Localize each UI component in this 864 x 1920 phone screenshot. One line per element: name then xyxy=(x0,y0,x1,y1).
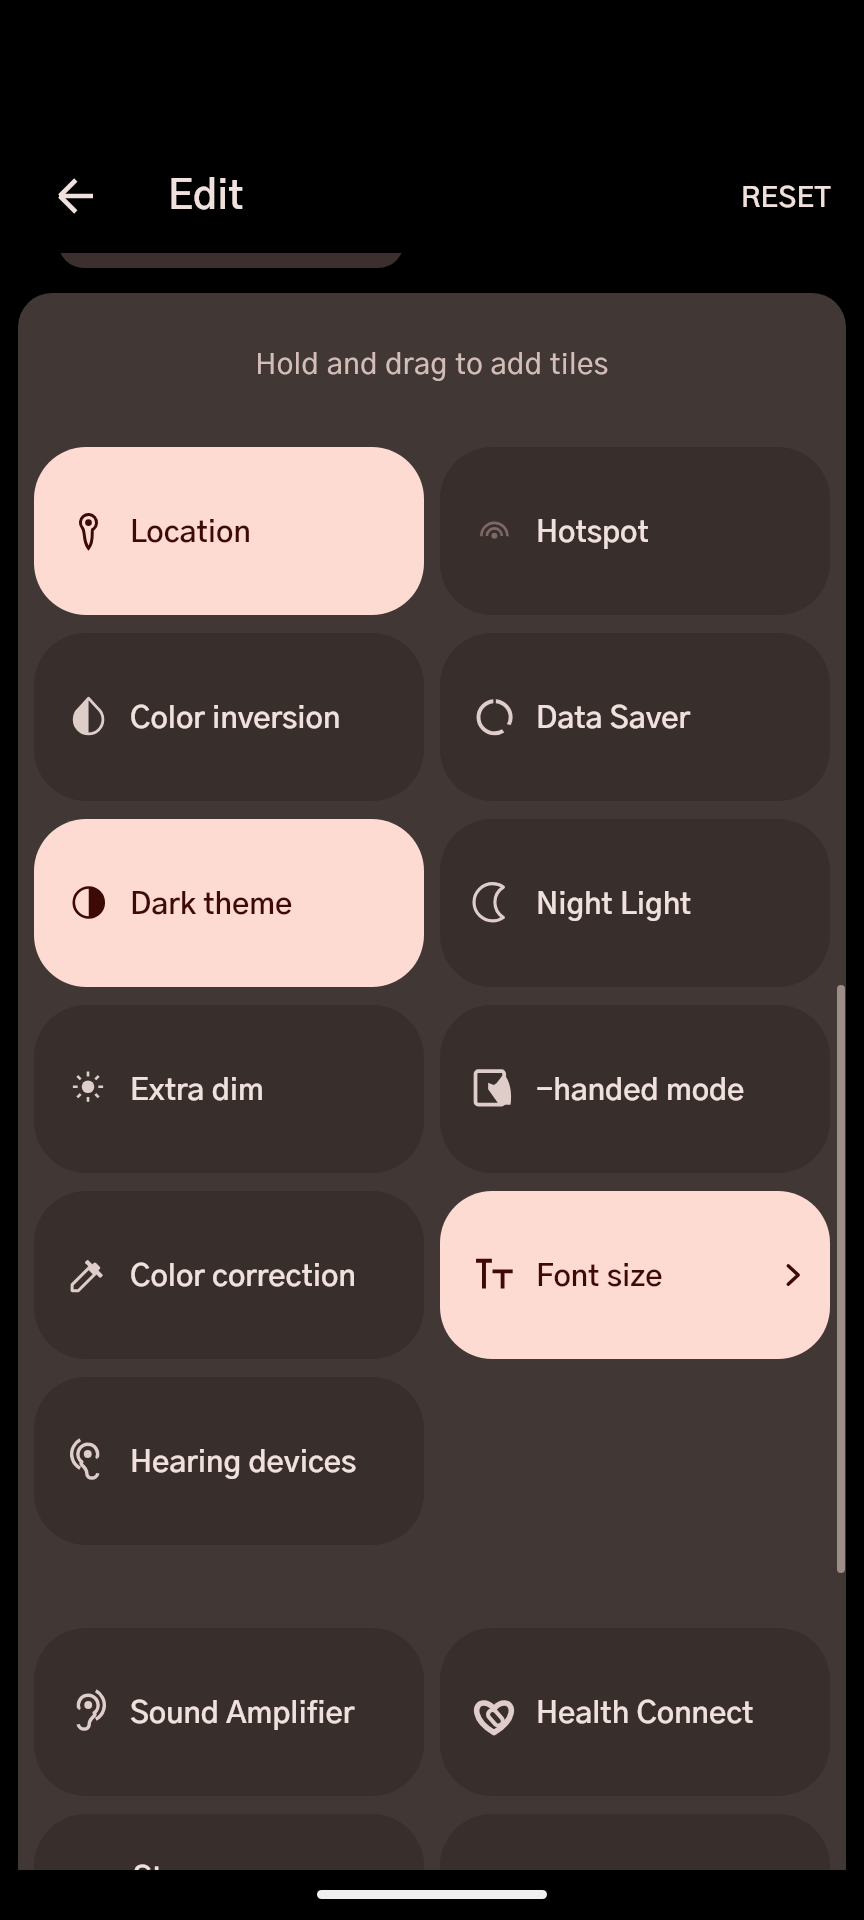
staticText: Sound Amplifier xyxy=(130,1699,355,1729)
staticText: Extra dim xyxy=(130,1076,264,1106)
button[interactable]: Color correction xyxy=(34,1191,424,1359)
staticText: Hotspot xyxy=(536,518,649,548)
button[interactable]: RESET xyxy=(719,157,853,241)
button[interactable]: Font size xyxy=(440,1191,830,1359)
staticText: -handed mode xyxy=(536,1076,745,1106)
staticText: Night Light xyxy=(536,890,692,920)
staticText: Location xyxy=(130,518,251,548)
button[interactable]: Health Connect xyxy=(440,1628,830,1796)
button[interactable]: Hearing devices xyxy=(34,1377,424,1545)
button[interactable]: Extra dim xyxy=(34,1005,424,1173)
staticText: Hearing devices xyxy=(130,1448,357,1478)
staticText: Dark theme xyxy=(130,890,293,920)
button[interactable]: Dark theme xyxy=(34,819,424,987)
button[interactable]: Data Saver xyxy=(440,633,830,801)
staticText: Health Connect xyxy=(536,1699,754,1729)
staticText: Font size xyxy=(536,1262,663,1292)
button[interactable] xyxy=(34,1814,424,1920)
button[interactable]: Location xyxy=(34,447,424,615)
staticText: RESET xyxy=(741,185,832,213)
staticText: Hold and drag to add tiles xyxy=(18,351,846,380)
staticText: Edit xyxy=(168,177,244,217)
button[interactable]: Color inversion xyxy=(34,633,424,801)
staticText: Color correction xyxy=(130,1262,356,1292)
button[interactable]: Night Light xyxy=(440,819,830,987)
button[interactable] xyxy=(440,1814,830,1920)
button[interactable]: Back xyxy=(48,168,104,224)
button[interactable]: Sound Amplifier xyxy=(34,1628,424,1796)
staticText: Storage xyxy=(133,1864,244,1894)
staticText: Color inversion xyxy=(130,704,341,734)
staticText: Data Saver xyxy=(536,704,690,734)
button[interactable]: Hotspot xyxy=(440,447,830,615)
button[interactable]: -handed mode xyxy=(440,1005,830,1173)
